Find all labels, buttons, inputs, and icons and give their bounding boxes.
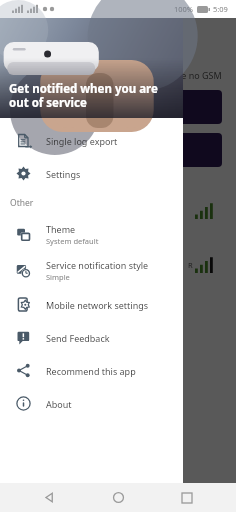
button[interactable]: About — [0, 387, 183, 420]
button[interactable]: Send Feedback — [0, 321, 183, 354]
staticText: 100% — [174, 4, 194, 14]
button[interactable]: Settings — [0, 157, 183, 190]
button[interactable] — [12, 189, 224, 233]
staticText: Get notified when you are out of service — [9, 81, 158, 111]
staticText: 5:09 — [213, 4, 228, 14]
button[interactable]: Home — [98, 483, 138, 512]
staticText: Single log export — [46, 135, 118, 147]
button[interactable]: Recommend this app — [0, 354, 183, 387]
button[interactable]: R — [12, 243, 224, 287]
button[interactable]: Back — [29, 483, 69, 512]
button[interactable]: Theme — [0, 216, 183, 252]
staticText: Mobile network settings — [46, 299, 149, 311]
button[interactable] — [14, 133, 222, 167]
staticText: Other — [10, 197, 34, 209]
staticText: About — [46, 398, 72, 410]
button[interactable]: Service notification style — [0, 252, 183, 288]
staticText: R — [188, 260, 193, 270]
staticText: Recommend this app — [46, 365, 136, 377]
staticText: Simple — [46, 272, 70, 282]
button[interactable]: Single log export — [0, 124, 183, 157]
staticText: System default — [46, 236, 99, 246]
staticText: Theme — [46, 223, 76, 235]
button[interactable] — [14, 90, 222, 124]
staticText: Send Feedback — [46, 332, 110, 344]
staticText: …you have no GSM — [141, 69, 222, 81]
staticText: Settings — [46, 168, 81, 180]
button[interactable]: Recent apps — [167, 483, 207, 512]
staticText: Service notification style — [46, 259, 149, 271]
button[interactable]: Mobile network settings — [0, 288, 183, 321]
